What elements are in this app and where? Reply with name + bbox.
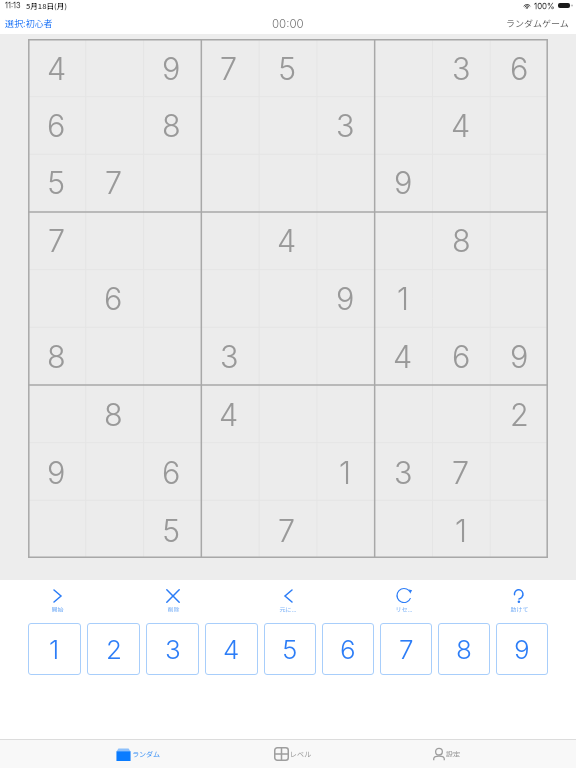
button[interactable]: Cell row 7 column 9 value 2 [490, 384, 548, 442]
button[interactable]: Cell row 1 column 4 value 7 [200, 39, 258, 96]
button[interactable]: 選択:初心者 [0, 17, 53, 30]
button[interactable]: Cell row 1 column 3 value 9 [142, 39, 200, 96]
button[interactable]: Cell row 1 column 1 value 4 [28, 39, 85, 96]
button[interactable]: Empty cell row 5 column 9 [490, 268, 548, 326]
button[interactable]: 7 [380, 623, 432, 675]
button[interactable]: Cell row 6 column 1 value 8 [28, 326, 85, 384]
button[interactable]: Cell row 6 column 4 value 3 [200, 326, 258, 384]
button[interactable]: Cell row 2 column 8 value 4 [432, 96, 490, 153]
button[interactable]: Empty cell row 7 column 3 [142, 384, 200, 442]
button[interactable]: Empty cell row 1 column 7 [374, 39, 432, 96]
button[interactable]: Cell row 2 column 1 value 6 [28, 96, 85, 153]
button[interactable]: Cell row 8 column 1 value 9 [28, 442, 85, 500]
button[interactable]: Cell row 1 column 5 value 5 [258, 39, 316, 96]
button[interactable]: リセ... [375, 588, 433, 614]
button[interactable]: Cell row 6 column 7 value 4 [374, 326, 432, 384]
button[interactable]: Cell row 4 column 1 value 7 [28, 210, 85, 268]
button[interactable]: Cell row 8 column 3 value 6 [142, 442, 200, 500]
button[interactable]: 元に... [259, 588, 317, 614]
button[interactable]: Empty cell row 7 column 5 [258, 384, 316, 442]
button[interactable]: Empty cell row 4 column 3 [142, 210, 200, 268]
button[interactable]: 助けて [490, 588, 548, 614]
button[interactable]: Cell row 9 column 5 value 7 [258, 500, 316, 558]
button[interactable]: Empty cell row 2 column 7 [374, 96, 432, 153]
button[interactable]: 5 [264, 623, 316, 675]
button[interactable]: Empty cell row 3 column 4 [200, 153, 258, 210]
button[interactable]: Cell row 8 column 6 value 1 [316, 442, 374, 500]
button[interactable]: Cell row 6 column 8 value 6 [432, 326, 490, 384]
button[interactable]: Cell row 9 column 3 value 5 [142, 500, 200, 558]
button[interactable]: Cell row 6 column 9 value 9 [490, 326, 548, 384]
button[interactable]: Empty cell row 9 column 4 [200, 500, 258, 558]
button[interactable]: 開始 [28, 588, 86, 614]
button[interactable]: Empty cell row 2 column 4 [200, 96, 258, 153]
button[interactable]: Empty cell row 3 column 9 [490, 153, 548, 210]
button[interactable]: Cell row 1 column 9 value 6 [490, 39, 548, 96]
button[interactable]: Cell row 1 column 8 value 3 [432, 39, 490, 96]
button[interactable]: Empty cell row 9 column 1 [28, 500, 85, 558]
button[interactable]: Cell row 3 column 7 value 9 [374, 153, 432, 210]
button[interactable]: Empty cell row 9 column 9 [490, 500, 548, 558]
button[interactable]: 9 [496, 623, 548, 675]
button[interactable]: Cell row 5 column 2 value 6 [85, 268, 142, 326]
button[interactable]: Empty cell row 5 column 4 [200, 268, 258, 326]
button[interactable]: Empty cell row 4 column 4 [200, 210, 258, 268]
button[interactable]: Empty cell row 7 column 1 [28, 384, 85, 442]
button[interactable]: Cell row 5 column 6 value 9 [316, 268, 374, 326]
button[interactable]: Empty cell row 7 column 8 [432, 384, 490, 442]
button[interactable]: Cell row 8 column 8 value 7 [432, 442, 490, 500]
button[interactable]: Cell row 3 column 1 value 5 [28, 153, 85, 210]
button[interactable]: Empty cell row 1 column 2 [85, 39, 142, 96]
button[interactable]: 4 [205, 623, 258, 675]
button[interactable]: 6 [322, 623, 374, 675]
button[interactable]: Empty cell row 4 column 7 [374, 210, 432, 268]
button[interactable]: Cell row 5 column 7 value 1 [374, 268, 432, 326]
button[interactable]: Empty cell row 9 column 6 [316, 500, 374, 558]
button[interactable]: ランダム [61, 740, 215, 768]
button[interactable]: Empty cell row 7 column 6 [316, 384, 374, 442]
button[interactable]: Empty cell row 5 column 1 [28, 268, 85, 326]
button[interactable]: 1 [28, 623, 81, 675]
button[interactable]: Cell row 9 column 8 value 1 [432, 500, 490, 558]
button[interactable]: Cell row 8 column 7 value 3 [374, 442, 432, 500]
button[interactable]: Cell row 4 column 8 value 8 [432, 210, 490, 268]
button[interactable]: Empty cell row 9 column 2 [85, 500, 142, 558]
button[interactable]: Empty cell row 8 column 9 [490, 442, 548, 500]
button[interactable]: Empty cell row 7 column 7 [374, 384, 432, 442]
button[interactable]: Cell row 2 column 6 value 3 [316, 96, 374, 153]
button[interactable]: 設定 [369, 740, 523, 768]
button[interactable]: 2 [87, 623, 140, 675]
button[interactable]: Empty cell row 9 column 7 [374, 500, 432, 558]
button[interactable]: 8 [438, 623, 490, 675]
button[interactable]: Cell row 2 column 3 value 8 [142, 96, 200, 153]
button[interactable]: レベル [215, 740, 369, 768]
button[interactable]: Cell row 7 column 4 value 4 [200, 384, 258, 442]
button[interactable]: Empty cell row 2 column 9 [490, 96, 548, 153]
button[interactable]: Empty cell row 4 column 6 [316, 210, 374, 268]
button[interactable]: 3 [146, 623, 199, 675]
button[interactable]: Empty cell row 4 column 2 [85, 210, 142, 268]
button[interactable]: Empty cell row 8 column 4 [200, 442, 258, 500]
button[interactable]: Cell row 3 column 2 value 7 [85, 153, 142, 210]
button[interactable]: Empty cell row 1 column 6 [316, 39, 374, 96]
button[interactable]: 削除 [144, 588, 202, 614]
button[interactable]: Empty cell row 4 column 9 [490, 210, 548, 268]
button[interactable]: Cell row 7 column 2 value 8 [85, 384, 142, 442]
button[interactable]: ランダムゲーム [506, 17, 576, 30]
button[interactable]: Cell row 4 column 5 value 4 [258, 210, 316, 268]
